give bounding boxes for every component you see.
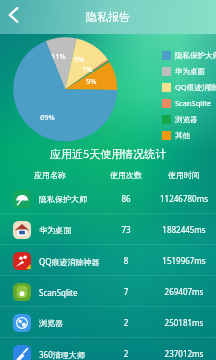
staticText: 2 (100, 317, 152, 328)
staticText: 其他 (175, 131, 190, 140)
staticText: 269407ms (152, 286, 216, 297)
staticText: 8 (100, 255, 152, 266)
staticText: 360清理大师 (39, 349, 85, 360)
button[interactable]: 360清理大师 (0, 338, 216, 360)
staticText: 250181ms (152, 317, 216, 328)
button[interactable]: ScanSqlite (162, 95, 212, 111)
staticText: 237012ms (152, 348, 216, 359)
staticText: QQ痕迹消除神器 (175, 82, 216, 92)
staticText: 华为桌面 (39, 225, 71, 235)
button[interactable]: 华为桌面 (162, 63, 205, 79)
button[interactable]: 浏览器 (0, 307, 216, 338)
button[interactable]: ScanSqlite (0, 276, 216, 307)
staticText: 华为桌面 (175, 67, 205, 76)
staticText: 11% (51, 51, 66, 61)
button[interactable]: 隐私保护大师 (162, 47, 216, 63)
staticText: 1519967ms (152, 255, 216, 266)
button[interactable]: 华为桌面 (0, 214, 216, 245)
button[interactable]: QQ痕迹消除神器 (0, 245, 216, 276)
staticText: 7 (100, 286, 152, 297)
staticText: 11246780ms (152, 193, 216, 204)
staticText: 隐私保护大师 (39, 194, 87, 204)
staticText: 1882445ms (152, 224, 216, 235)
staticText: 隐私报告 (86, 10, 130, 24)
staticText: 隐私保护大师 (175, 51, 216, 60)
staticText: 1% (82, 64, 93, 74)
button[interactable]: Back (0, 2, 30, 32)
staticText: 9% (86, 76, 97, 86)
staticText: 应用近5天使用情况统计 (50, 146, 167, 161)
staticText: 2 (100, 348, 152, 359)
staticText: 浏览器 (39, 318, 63, 328)
staticText: QQ痕迹消除神器 (39, 256, 100, 267)
button[interactable]: 浏览器 (162, 111, 198, 127)
staticText: ScanSqlite (39, 287, 78, 298)
staticText: 86 (100, 193, 152, 204)
staticText: 73 (100, 224, 152, 235)
staticText: 浏览器 (175, 115, 198, 124)
staticText: 69% (40, 112, 55, 122)
staticText: 使用次数 (100, 170, 152, 180)
staticText: 应用名称 (0, 170, 100, 180)
staticText: 使用时间 (152, 170, 216, 180)
staticText: 9% (74, 54, 85, 64)
staticText: ScanSqlite (175, 98, 212, 108)
button[interactable]: 隐私保护大师 (0, 183, 216, 214)
button[interactable]: 其他 (162, 127, 190, 143)
button[interactable]: QQ痕迹消除神器 (162, 79, 216, 95)
